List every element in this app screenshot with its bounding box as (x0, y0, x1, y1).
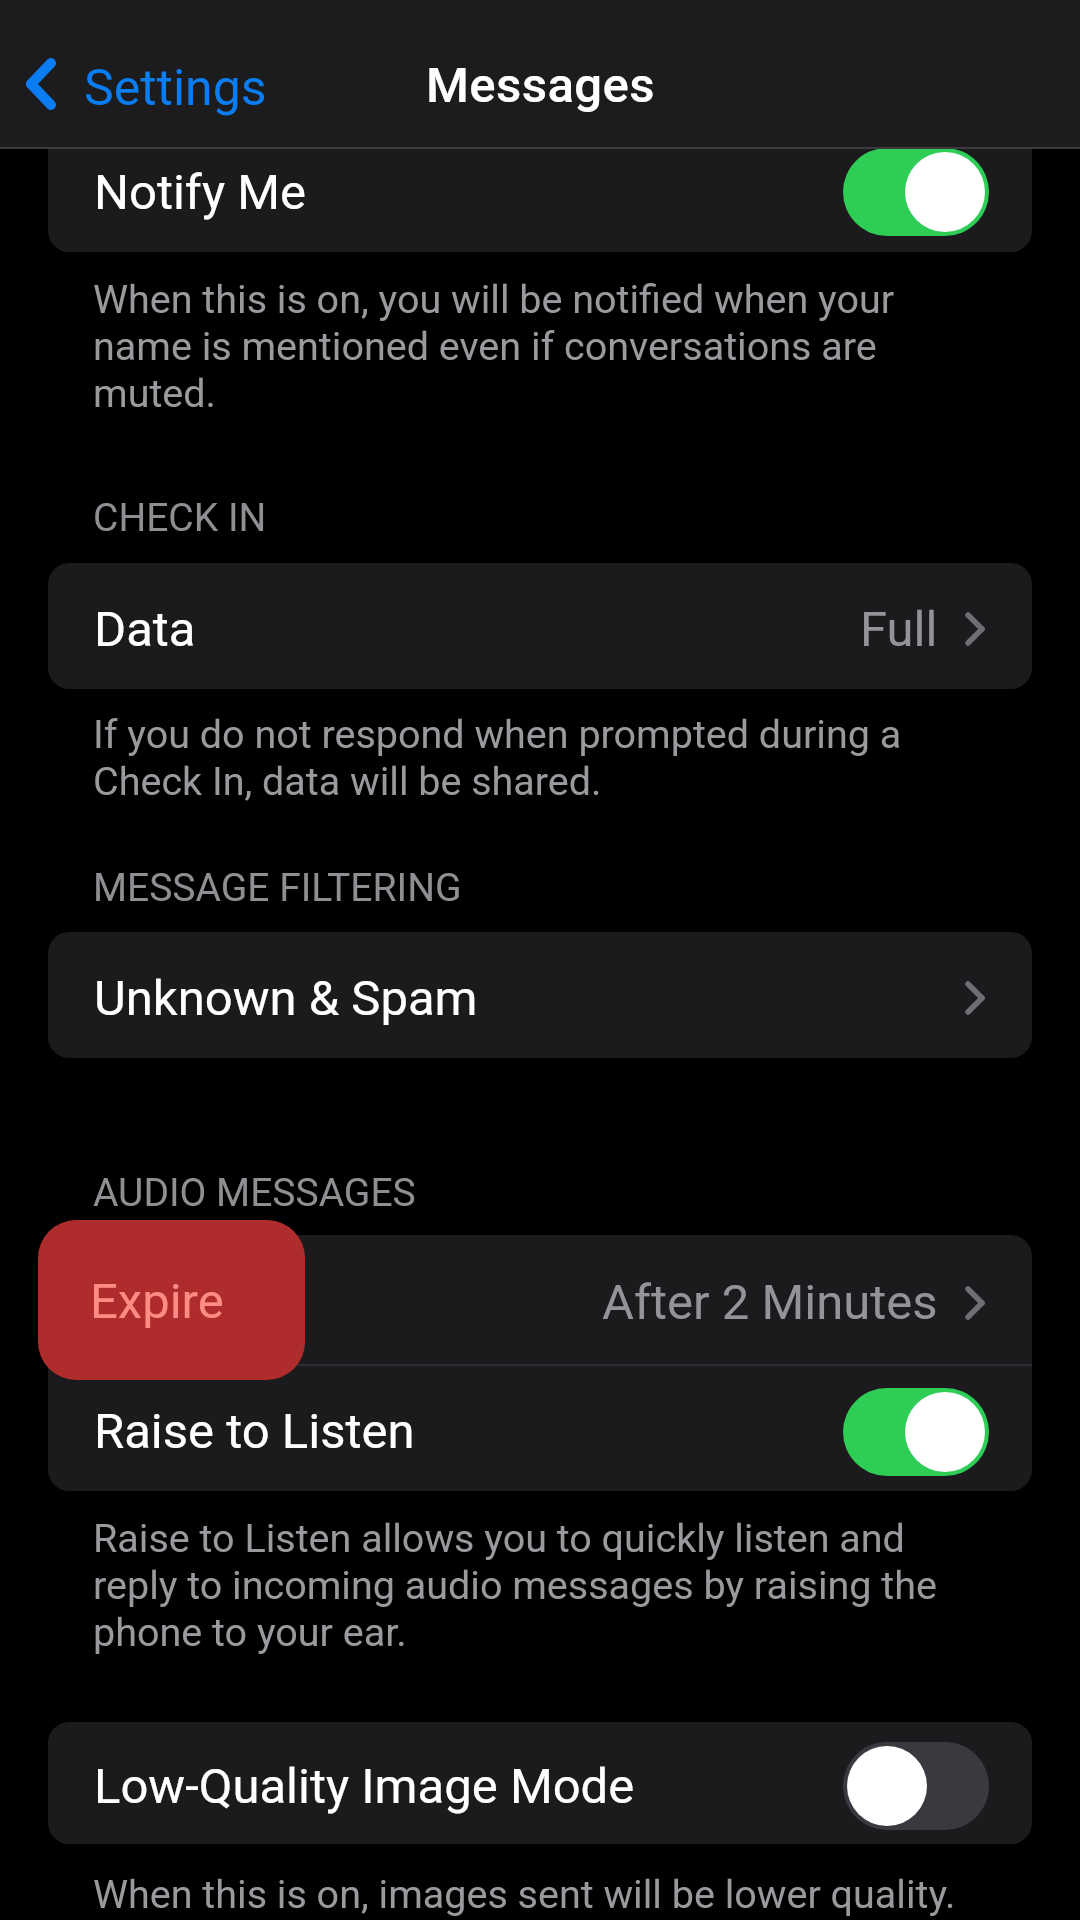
staticText: Raise to Listen allows you to quickly li… (93, 1515, 973, 1656)
button[interactable]: Expire (38, 1220, 305, 1380)
staticText: Full (860, 601, 938, 658)
staticText: Expire (94, 1274, 228, 1331)
staticText: MESSAGE FILTERING (93, 865, 462, 911)
staticText: When this is on, images sent will be low… (93, 1871, 973, 1918)
staticText: Expire (90, 1273, 224, 1330)
staticText: Unknown & Spam (94, 970, 478, 1027)
button[interactable]: Back to Settings (0, 58, 285, 132)
button[interactable]: Unknown & Spam (48, 932, 1032, 1058)
button[interactable]: Expire (48, 1235, 1032, 1364)
staticText: When this is on, you will be notified wh… (93, 276, 973, 417)
staticText: After 2 Minutes (602, 1274, 938, 1331)
staticText: Low-Quality Image Mode (94, 1758, 635, 1815)
button[interactable]: Low-Quality Image Mode (48, 1722, 1032, 1844)
button[interactable]: Notify Me (48, 126, 1032, 252)
button[interactable]: Raise to Listen (48, 1366, 1032, 1491)
staticText: Data (94, 601, 196, 658)
staticText: Messages (426, 57, 655, 114)
staticText: CHECK IN (93, 495, 267, 541)
staticText: Notify Me (94, 164, 306, 221)
staticText: Settings (84, 59, 267, 118)
staticText: AUDIO MESSAGES (93, 1170, 416, 1216)
staticText: Raise to Listen (94, 1403, 415, 1460)
button[interactable]: Data (48, 563, 1032, 689)
staticText: If you do not respond when prompted duri… (93, 711, 973, 805)
